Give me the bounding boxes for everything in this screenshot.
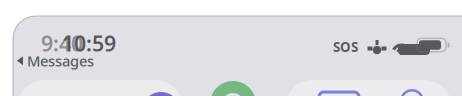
staticText: 10:59 (62, 29, 116, 57)
button[interactable]: Messages (17, 51, 94, 70)
staticText: SOS (333, 38, 358, 56)
button[interactable]: 148 (17, 80, 183, 96)
staticText: Messages (27, 51, 94, 70)
button[interactable] (285, 80, 452, 96)
staticText: 9:40 (41, 29, 83, 57)
